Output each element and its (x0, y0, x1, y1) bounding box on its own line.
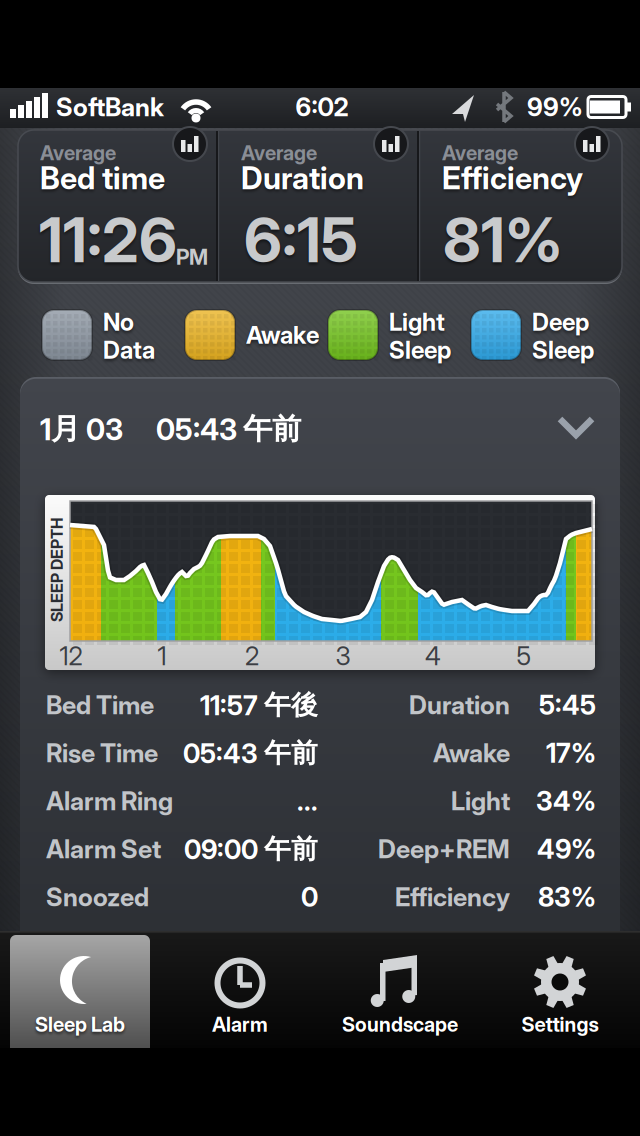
staticText: Settings (521, 1013, 598, 1036)
staticText: 34% (536, 785, 596, 817)
staticText: 17% (546, 737, 596, 769)
staticText: 05:43 午前 (156, 411, 301, 447)
staticText: 1月 03 (40, 411, 123, 447)
button[interactable]: Collapse day 1月 03 (20, 392, 620, 466)
button[interactable]: Settings (482, 935, 638, 1048)
button[interactable]: Sleep Lab (10, 935, 150, 1048)
staticText: Data (103, 336, 155, 364)
staticText: Sleep (532, 336, 594, 364)
button[interactable]: Show Duration history (374, 127, 408, 161)
staticText: 83% (538, 881, 596, 913)
staticText: Alarm Ring (46, 786, 173, 816)
staticText: 05:43 午前 (183, 737, 318, 769)
staticText: Rise Time (46, 738, 158, 768)
staticText: 2 (245, 641, 259, 671)
staticText: Deep+REM (378, 834, 510, 864)
staticText: 12 (59, 641, 82, 671)
staticText: Efficiency (395, 882, 510, 912)
staticText: 6:15 (244, 204, 358, 276)
staticText: 09:00 午前 (184, 833, 318, 865)
staticText: 5:45 (539, 689, 596, 721)
staticText: Average (442, 141, 518, 165)
staticText: Efficiency (442, 160, 583, 196)
staticText: SoftBank (56, 92, 164, 122)
staticText: 1 (157, 641, 166, 671)
staticText: 81% (443, 204, 563, 276)
button[interactable]: Show Bed time history (173, 127, 207, 161)
staticText: 3 (335, 641, 350, 671)
staticText: 5 (516, 641, 531, 671)
button[interactable]: Alarm (162, 935, 318, 1048)
staticText: Alarm (212, 1013, 268, 1036)
staticText: Average (241, 141, 317, 165)
staticText: Deep (532, 308, 589, 336)
staticText: 11:26 (39, 204, 177, 276)
staticText: Duration (409, 690, 510, 720)
staticText: Average (40, 141, 116, 165)
button[interactable]: Show Efficiency history (575, 127, 609, 161)
staticText: Bed time (40, 160, 165, 196)
staticText: ... (297, 785, 318, 817)
staticText: SLEEP DEPTH (5, 561, 109, 579)
staticText: Snoozed (46, 882, 149, 912)
staticText: Sleep (389, 336, 451, 364)
button[interactable]: Soundscape (322, 935, 478, 1048)
staticText: Bed Time (46, 690, 154, 720)
staticText: PM (176, 244, 208, 270)
staticText: 0 (301, 881, 318, 913)
staticText: 99% (527, 92, 583, 122)
staticText: No (103, 308, 134, 336)
staticText: Duration (241, 160, 364, 196)
staticText: Awake (246, 321, 319, 349)
staticText: Soundscape (342, 1013, 458, 1036)
staticText: Light (451, 786, 510, 816)
staticText: Light (389, 308, 445, 336)
staticText: 6:02 (295, 92, 348, 122)
staticText: Alarm Set (46, 834, 161, 864)
staticText: Awake (433, 738, 510, 768)
staticText: 11:57 午後 (200, 689, 318, 721)
staticText: 4 (425, 641, 441, 671)
staticText: Sleep Lab (35, 1013, 125, 1036)
staticText: 49% (537, 833, 596, 865)
